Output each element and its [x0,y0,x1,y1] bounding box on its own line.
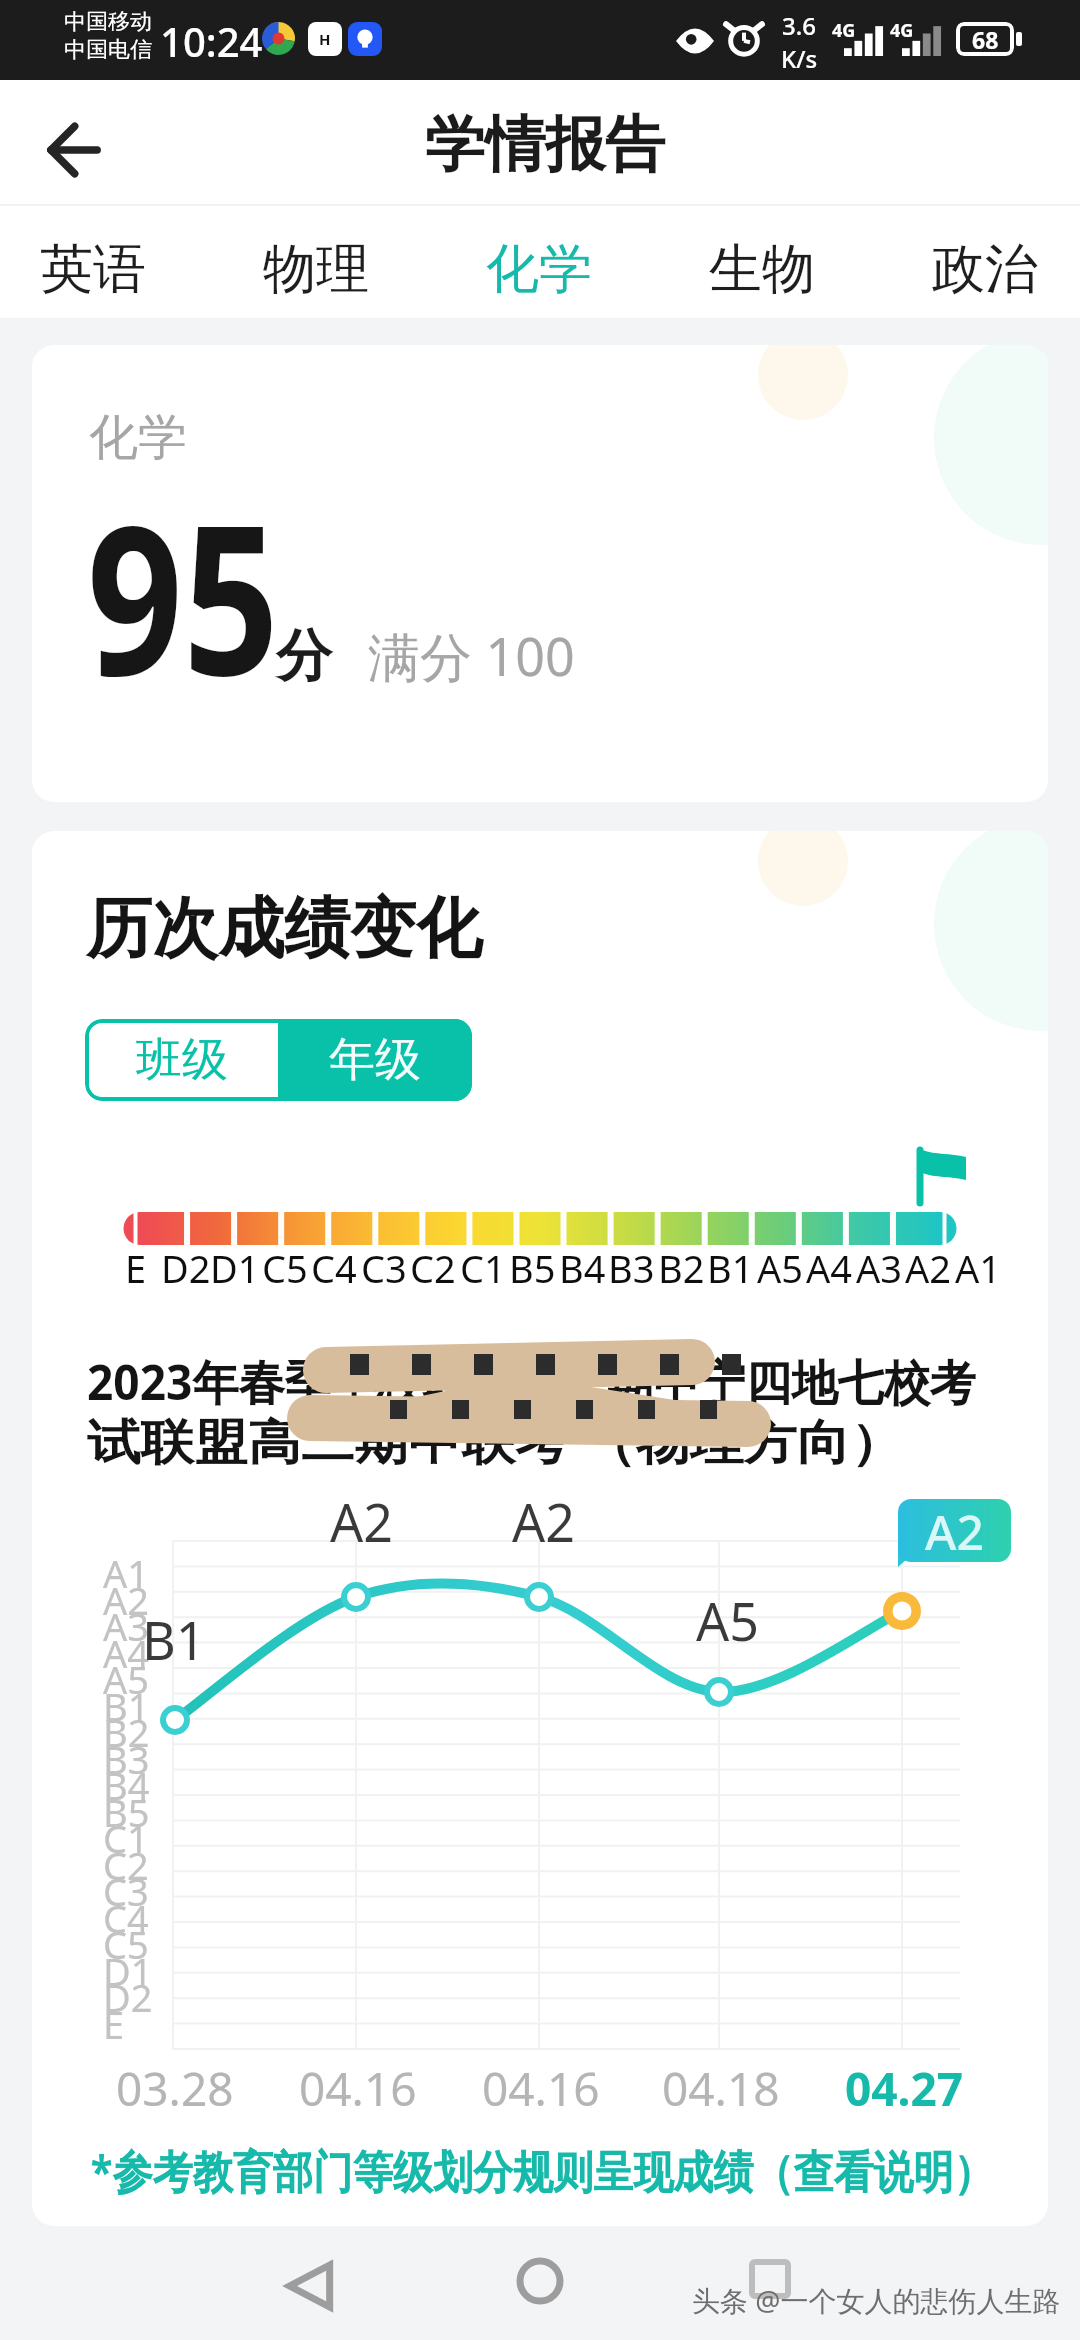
staticText: A1 [103,1547,150,1599]
staticText: B5 [509,1242,556,1294]
staticText: 分 [276,621,332,692]
button[interactable]: 英语 [0,220,188,318]
staticText: B1 [103,1680,150,1732]
staticText: 3.6 [782,9,816,42]
staticText: E [125,1242,147,1294]
button[interactable]: 班级 [85,1019,278,1101]
staticText: B4 [559,1242,606,1294]
staticText: 英语 [40,236,146,303]
staticText: A2 [905,1242,952,1294]
staticText: A5 [103,1653,150,1705]
button[interactable]: 政治 [890,220,1080,318]
button[interactable]: Back [32,102,128,198]
staticText: C2 [410,1242,456,1294]
button[interactable]: Back [259,2236,359,2336]
staticText: E [103,1998,125,2050]
staticText: 10:24 [160,14,263,68]
staticText: 满分 100 [368,620,575,691]
staticText: C3 [103,1865,149,1917]
staticText: C4 [311,1242,357,1294]
staticText: 头条 @一个女人的悲伤人生路 [692,2281,1061,2319]
button[interactable]: *参考教育部门等级划分规则呈现成绩（查看说明） [35,2132,1045,2208]
staticText: 班级 [136,1031,228,1089]
staticText: 04.16 [299,2057,417,2120]
staticText: C5 [262,1242,308,1294]
staticText: 68 [972,24,999,55]
staticText: C4 [103,1892,149,1944]
staticText: C1 [460,1242,506,1294]
staticText: C5 [103,1918,149,1970]
staticText: A2 [103,1574,150,1626]
staticText: A3 [103,1600,150,1652]
staticText: B1 [142,1604,206,1675]
staticText: 生物 [709,236,815,303]
staticText: 物理 [263,236,369,303]
staticText: A5 [696,1585,759,1656]
staticText: A2 [925,1499,984,1562]
staticText: 95 [87,454,279,736]
staticText: 试联盟高二期中联考 （物理方向） [87,1408,904,1474]
staticText: B4 [103,1759,150,1811]
staticText: B2 [658,1242,705,1294]
staticText: 04.16 [482,2057,600,2120]
staticText: C1 [103,1812,149,1864]
button[interactable]: 化学 [444,220,634,318]
staticText: D1 [103,1945,153,1997]
staticText: A2 [330,1486,393,1557]
staticText: *参考教育部门等级划分规则呈现成绩（查看说明） [91,2140,989,2201]
button[interactable]: 物理 [221,220,411,318]
staticText: A4 [806,1242,853,1294]
staticText: A1 [955,1242,1002,1294]
staticText: 化学 [486,236,592,303]
staticText: 04.27 [845,2057,964,2120]
button[interactable]: Home [490,2231,590,2331]
button[interactable]: 年级 [278,1019,472,1101]
staticText: B5 [103,1786,150,1838]
staticText: B1 [707,1242,754,1294]
staticText: K/s [781,42,818,75]
staticText: A3 [856,1242,903,1294]
staticText: C3 [361,1242,407,1294]
staticText: A2 [512,1486,575,1557]
staticText: A5 [757,1242,804,1294]
staticText: B2 [103,1706,150,1758]
staticText: 04.18 [662,2057,780,2120]
staticText: 年级 [329,1031,421,1089]
staticText: 4G [890,18,914,43]
staticText: H [319,29,331,49]
staticText: 中国移动 [64,8,152,36]
staticText: D1 [210,1242,260,1294]
staticText: B3 [608,1242,655,1294]
staticText: D2 [103,1971,153,2023]
staticText: 学情报告 [425,107,665,183]
staticText: 4G [832,18,856,43]
staticText: 化学 [89,407,187,469]
staticText: 历次成绩变化 [86,887,482,970]
staticText: 2023年春季学校联盟高二期中宁四地七校考 [87,1349,976,1415]
staticText: 政治 [932,236,1038,303]
staticText: 03.28 [116,2057,234,2120]
staticText: D2 [161,1242,211,1294]
staticText: B3 [103,1733,150,1785]
button[interactable]: Recents [720,2230,820,2330]
staticText: C2 [103,1839,149,1891]
staticText: 中国电信 [64,36,152,64]
button[interactable]: 生物 [667,220,857,318]
staticText: A4 [103,1627,150,1679]
